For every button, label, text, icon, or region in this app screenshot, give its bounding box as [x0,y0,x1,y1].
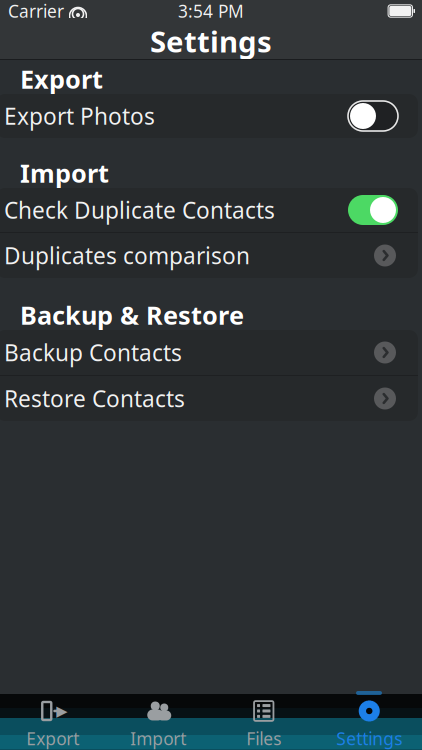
staticText: 3:54 PM [178,0,244,22]
button[interactable]: Duplicates comparison [0,233,418,278]
staticText: Export [20,62,103,96]
staticText: Restore Contacts [4,383,185,413]
staticText: Import [20,156,109,190]
button[interactable]: Check Duplicate Contacts [0,188,418,232]
button[interactable]: Files [211,699,316,750]
staticText: Duplicates comparison [4,240,250,270]
staticText: Check Duplicate Contacts [4,195,275,225]
staticText: Export [26,727,79,750]
button[interactable]: Import [105,699,211,750]
staticText: Import [130,727,186,750]
staticText: Backup Contacts [4,337,182,367]
staticText: ▶ [56,703,67,719]
staticText: Settings [336,727,402,750]
button[interactable]: ▶ [0,699,105,750]
staticText: Export Photos [4,101,155,131]
staticText: Settings [150,21,272,60]
button[interactable]: Restore Contacts [0,376,418,421]
staticText: Carrier [8,0,64,22]
button[interactable]: Export Photos [0,94,418,138]
button[interactable]: Backup Contacts [0,330,418,375]
staticText: Files [246,727,281,750]
button[interactable]: Settings [316,699,422,750]
staticText: Backup & Restore [20,298,244,332]
